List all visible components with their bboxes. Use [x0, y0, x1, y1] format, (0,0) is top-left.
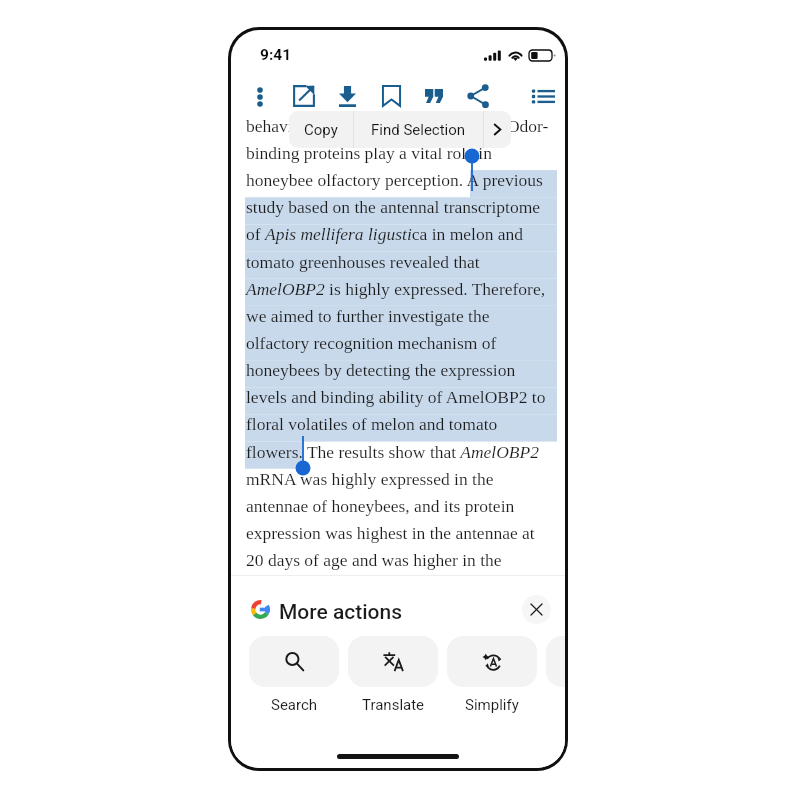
staticText: binding proteins play a vital role in: [246, 143, 492, 162]
button[interactable]: [447, 636, 537, 687]
staticText: More actions: [279, 600, 403, 625]
staticText: Copy: [304, 121, 338, 139]
button[interactable]: Copy: [289, 111, 353, 148]
staticText: Translate: [362, 696, 425, 714]
staticText: olfactory recognition mechanism of: [246, 333, 497, 352]
staticText: honeybee olfactory perception. A previou…: [246, 170, 543, 189]
staticText: expression was highest in the antennae a…: [246, 523, 535, 542]
button[interactable]: More options: [243, 80, 277, 112]
staticText: flowers. The results show that AmelOBP2: [246, 442, 539, 461]
button[interactable]: Open in new: [287, 80, 321, 112]
staticText: Search: [271, 696, 318, 714]
button[interactable]: Download: [330, 80, 364, 112]
staticText: tomato greenhouses revealed that: [246, 252, 480, 271]
staticText: we aimed to further investigate the: [246, 306, 490, 325]
staticText: levels and binding ability of AmelOBP2 t…: [246, 387, 546, 406]
button[interactable]: Close: [522, 595, 551, 624]
button[interactable]: [249, 636, 339, 687]
button[interactable]: More actions: [484, 111, 511, 148]
staticText: antennae of honeybees, and its protein: [246, 496, 515, 515]
button[interactable]: Table of contents: [526, 80, 560, 112]
staticText: floral volatiles of melon and tomato: [246, 414, 498, 433]
staticText: study based on the antennal transcriptom…: [246, 197, 541, 216]
button[interactable]: [348, 636, 438, 687]
button[interactable]: Find Selection: [354, 111, 483, 148]
staticText: behavioural responses of honeybees. Odor…: [246, 116, 549, 135]
staticText: 9:41: [260, 46, 292, 64]
staticText: mRNA was highly expressed in the: [246, 469, 494, 488]
staticText: AmelOBP2 is highly expressed. Therefore,: [246, 279, 546, 298]
staticText: honeybees by detecting the expression: [246, 360, 516, 379]
staticText: 20 days of age and was higher in the: [246, 550, 502, 569]
button[interactable]: Bookmark: [374, 80, 408, 112]
staticText: Find Selection: [371, 121, 466, 139]
button[interactable]: Quote: [417, 80, 451, 112]
button[interactable]: Share: [461, 80, 495, 112]
staticText: of Apis mellifera ligustica in melon and: [246, 224, 524, 243]
staticText: Simplify: [465, 696, 519, 714]
